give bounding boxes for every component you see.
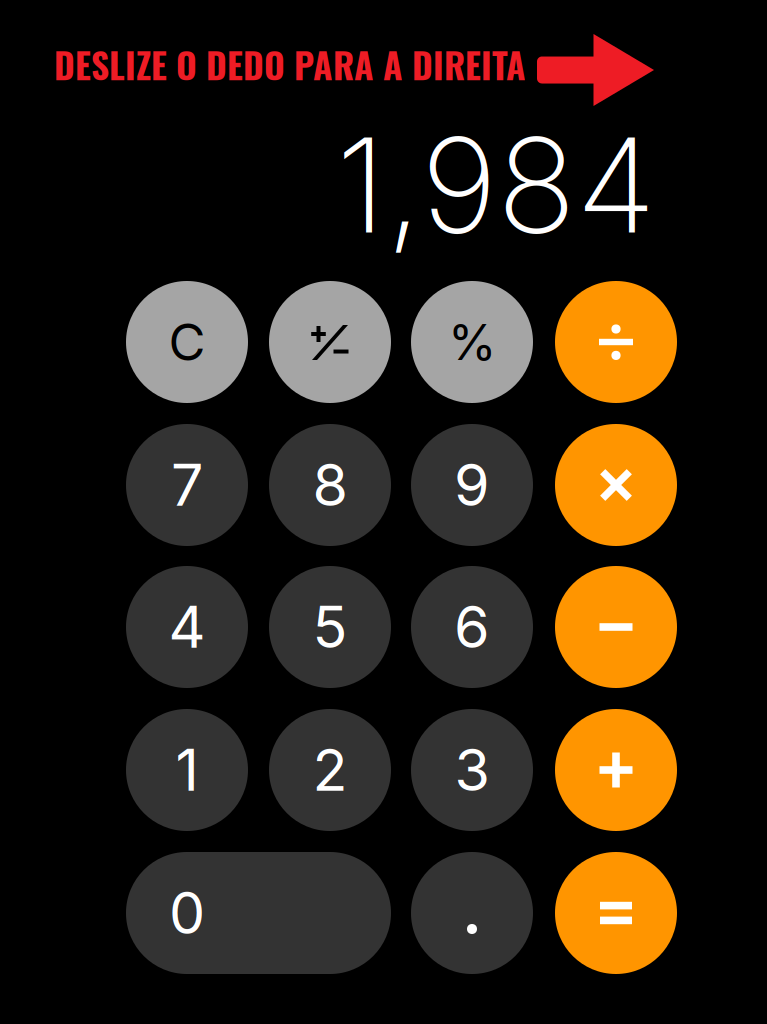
button[interactable]: 0 [126, 852, 391, 974]
staticText: C [168, 311, 205, 373]
staticText: 6 [454, 592, 490, 662]
button[interactable]: 2 [269, 709, 391, 831]
button[interactable]: 1 [126, 709, 248, 831]
button[interactable]: 4 [126, 566, 248, 688]
button[interactable]: 3 [411, 709, 533, 831]
button[interactable]: Divide [555, 281, 677, 403]
staticText: 1 [175, 735, 198, 805]
button[interactable]: Subtract [555, 566, 677, 688]
button[interactable]: Add [555, 709, 677, 831]
staticText: 5 [312, 592, 347, 662]
staticText: 0 [169, 878, 205, 948]
button[interactable]: Multiply [555, 424, 677, 546]
staticText: 2 [312, 735, 347, 805]
staticText: 9 [454, 450, 490, 520]
button[interactable]: 9 [411, 424, 533, 546]
button[interactable]: 5 [269, 566, 391, 688]
button[interactable]: Equals [555, 852, 677, 974]
button[interactable]: C [126, 281, 248, 403]
staticText: 3 [454, 735, 489, 805]
staticText: 4 [168, 592, 205, 662]
staticText: 7 [171, 450, 203, 520]
button[interactable]: Decimal point [411, 852, 533, 974]
staticText: DESLIZE O DEDO PARA A DIREITA [54, 38, 526, 91]
staticText: 1,984 [336, 106, 656, 264]
button[interactable]: 6 [411, 566, 533, 688]
button[interactable]: Plus Minus [269, 281, 391, 403]
button[interactable]: 7 [126, 424, 248, 546]
staticText: 8 [312, 450, 347, 520]
button[interactable]: 8 [269, 424, 391, 546]
button[interactable]: % [411, 281, 533, 403]
staticText: % [448, 312, 496, 372]
